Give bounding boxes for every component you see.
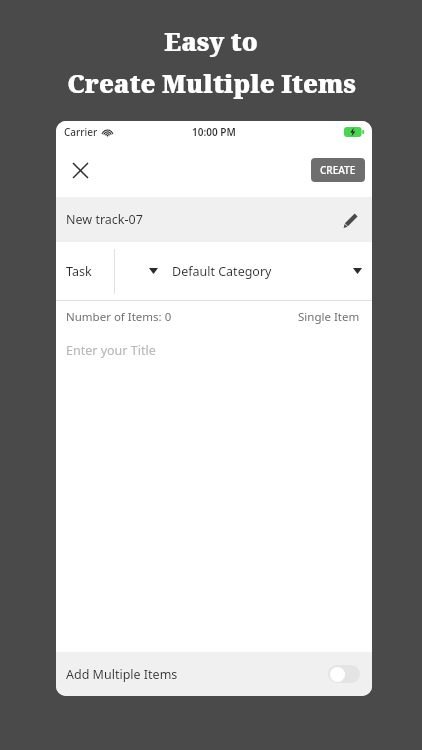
staticText: 10:00 PM [192,125,236,139]
button[interactable]: Default Category [172,251,362,291]
button[interactable]: Edit name [334,204,366,236]
staticText: Task [66,263,92,280]
staticText: New track-07 [66,211,143,228]
staticText: Carrier [64,125,98,139]
staticText: Create Multiple Items [67,66,356,100]
button[interactable]: Close [62,152,98,188]
button[interactable]: Task [66,251,166,291]
button[interactable]: CREATE [311,158,365,182]
staticText: Easy to [164,24,258,58]
staticText: CREATE [320,163,356,177]
staticText: Add Multiple Items [66,666,178,683]
button[interactable]: Single Item [286,305,372,329]
button[interactable]: Add Multiple Items [56,652,372,696]
staticText: Single Item [298,309,360,325]
button[interactable]: Add Multiple Items toggle [328,665,360,683]
staticText: Number of Items: 0 [66,309,172,325]
button[interactable]: New track-07 [56,197,372,242]
staticText: Default Category [172,263,272,280]
staticText: Enter your Title [66,342,156,359]
button[interactable]: Enter your Title [56,333,372,367]
